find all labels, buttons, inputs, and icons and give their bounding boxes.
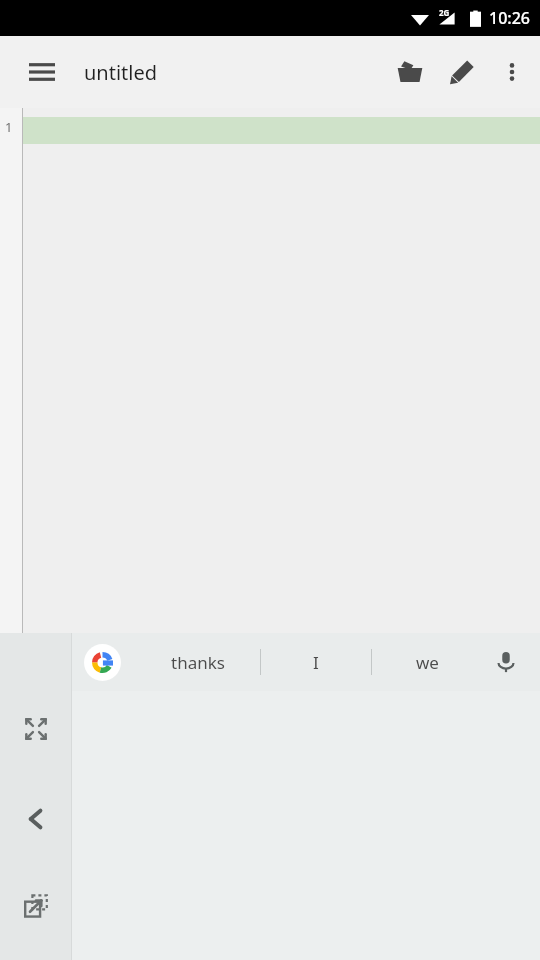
staticText: untitled <box>84 59 158 86</box>
staticText: thanks <box>171 651 225 674</box>
staticText: I <box>313 651 319 674</box>
button[interactable]: More options <box>488 48 536 96</box>
button[interactable]: Open folder <box>384 46 436 98</box>
button[interactable]: Back <box>0 791 72 847</box>
button[interactable]: Voice input <box>478 634 534 690</box>
button[interactable]: we <box>372 633 482 691</box>
button[interactable]: Edit <box>436 46 488 98</box>
staticText: we <box>416 651 439 674</box>
button[interactable]: Menu <box>14 44 70 100</box>
staticText: 10:26 <box>489 7 530 29</box>
button[interactable]: I <box>261 633 371 691</box>
button[interactable]: Resize keyboard <box>0 701 72 757</box>
staticText: 2G <box>439 7 450 18</box>
button[interactable]: Google search <box>80 640 124 684</box>
button[interactable]: thanks <box>136 633 260 691</box>
staticText: 1 <box>5 118 13 136</box>
button[interactable]: Float keyboard <box>0 878 72 934</box>
